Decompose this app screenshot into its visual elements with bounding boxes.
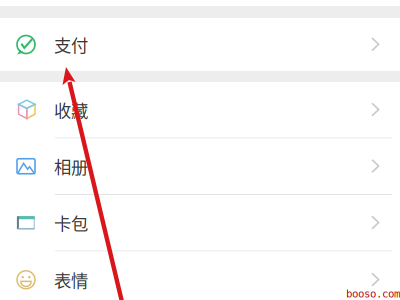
staticText: 表情 bbox=[54, 267, 88, 292]
staticText: 相册 bbox=[54, 154, 88, 179]
button[interactable]: 卡包 bbox=[0, 195, 400, 251]
button[interactable]: 支付 bbox=[0, 18, 400, 71]
button[interactable]: 收藏 bbox=[0, 82, 400, 138]
staticText: 收藏 bbox=[54, 97, 88, 122]
staticText: 卡包 bbox=[54, 210, 88, 235]
staticText: booso.com bbox=[346, 288, 400, 300]
button[interactable]: 表情 bbox=[0, 251, 400, 300]
button[interactable]: 相册 bbox=[0, 138, 400, 195]
staticText: 支付 bbox=[54, 32, 88, 57]
